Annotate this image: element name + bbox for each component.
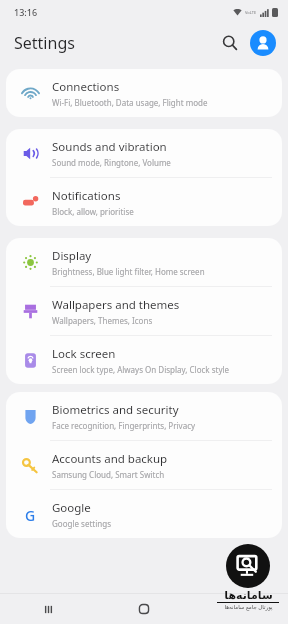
staticText: Wi-Fi, Bluetooth, Data usage, Flight mod… [52,97,208,108]
staticText: Google [52,500,91,516]
button[interactable]: G [6,490,282,538]
button[interactable]: Recents [0,594,96,624]
button[interactable]: Wallpapers and themes [6,287,282,335]
staticText: Accounts and backup [52,451,168,467]
button[interactable]: Sounds and vibration [6,129,282,177]
staticText: Lock screen [52,346,116,362]
staticText: Wallpapers, Themes, Icons [52,315,153,326]
staticText: سامانه‌ها [224,589,273,602]
button[interactable]: Search [216,29,244,57]
staticText: Notifications [52,188,121,204]
button[interactable]: Notifications [6,178,282,226]
staticText: G [25,506,36,523]
staticText: Google settings [52,518,111,529]
staticText: 13:16 [14,6,38,18]
button[interactable]: Accounts and backup [6,441,282,489]
staticText: Display [52,248,92,264]
staticText: Face recognition, Fingerprints, Privacy [52,420,196,431]
staticText: Biometrics and security [52,402,179,418]
staticText: Connections [52,79,120,95]
staticText: Brightness, Blue light filter, Home scre… [52,266,205,277]
button[interactable]: Connections [6,69,282,117]
staticText: Settings [14,32,75,54]
button[interactable]: Account [250,30,276,56]
staticText: Block, allow, prioritise [52,206,134,217]
staticText: VoLTE [245,10,257,15]
staticText: پورتال جامع سامانه‌ها [224,603,273,610]
button[interactable]: Biometrics and security [6,392,282,440]
button[interactable]: Home [96,594,192,624]
button[interactable]: Lock screen [6,336,282,384]
button[interactable]: Display [6,238,282,286]
staticText: Wallpapers and themes [52,297,180,313]
staticText: Sound mode, Ringtone, Volume [52,157,171,168]
staticText: Samsung Cloud, Smart Switch [52,469,165,480]
staticText: Screen lock type, Always On Display, Clo… [52,364,230,375]
staticText: Sounds and vibration [52,139,167,155]
